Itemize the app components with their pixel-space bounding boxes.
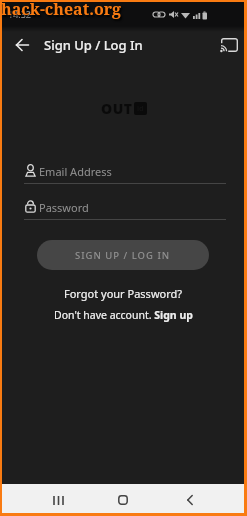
staticText: Password [39, 200, 89, 215]
button[interactable]: Forgot your Password? [0, 284, 247, 302]
button[interactable] [6, 33, 38, 57]
staticText: Email Address [39, 164, 112, 179]
button[interactable] [42, 484, 74, 516]
staticText: Sign Up / Log In [44, 36, 143, 54]
staticText: 14:32 [8, 8, 32, 20]
staticText: Forgot your Password? [64, 286, 183, 301]
staticText: SIGN UP / LOG IN [75, 249, 171, 262]
staticText: Don't have account. Sign up [54, 308, 193, 322]
button[interactable] [107, 484, 139, 516]
button[interactable]: Password [24, 196, 226, 222]
staticText: hack-cheat.org [1, 0, 122, 20]
button[interactable]: Email Address [24, 160, 226, 186]
button[interactable]: SIGN UP / LOG IN [37, 240, 209, 270]
button[interactable]: Don't have account. Sign up [0, 306, 247, 324]
button[interactable] [214, 33, 244, 57]
staticText: OUT [101, 99, 133, 118]
button[interactable] [174, 484, 206, 516]
